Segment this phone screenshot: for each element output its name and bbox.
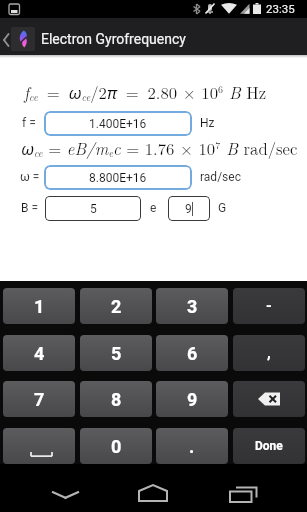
button[interactable] [233,381,305,417]
button[interactable] [3,428,75,464]
staticText: 1.400E+16 [89,117,147,131]
staticText: rad/sec [200,170,241,184]
button[interactable]: , [233,335,305,371]
staticText: 8 [111,389,122,410]
staticText: 9 [187,389,198,410]
staticText: Electron Gyrofrequency [41,31,186,47]
staticText: fce = ωce/2π = 2.80 × 106 B Hz [24,80,267,104]
staticText: ω = [20,170,40,184]
button[interactable]: 1.400E+16 [44,111,192,136]
staticText: Done [255,439,283,453]
button[interactable]: 4 [3,335,75,371]
button[interactable]: 6 [156,335,228,371]
staticText: 9 [185,202,192,216]
staticText: G [218,201,227,215]
staticText: 2 [111,296,122,317]
button[interactable] [40,478,90,508]
button[interactable]: 9 [168,196,210,221]
staticText: - [266,297,272,315]
staticText: 5 [90,202,97,216]
button[interactable]: . [156,428,228,464]
button[interactable]: - [233,288,305,324]
staticText: 3 [187,296,198,317]
button[interactable]: Done [233,428,305,464]
staticText: ωce = eB/mec = 1.76 × 107 B rad/sec [21,136,298,160]
button[interactable]: 1 [3,288,75,324]
staticText: . [189,436,195,457]
staticText: f = [22,116,36,130]
button[interactable]: 7 [3,381,75,417]
button[interactable] [215,478,265,508]
staticText: 23:35 [266,2,295,15]
button[interactable]: 8 [80,381,152,417]
button[interactable]: 2 [80,288,152,324]
staticText: 8.800E+16 [89,171,147,185]
staticText: 1 [34,296,45,317]
staticText: , [267,344,271,362]
staticText: 4 [34,343,45,364]
button[interactable] [11,27,35,51]
button[interactable]: 3 [156,288,228,324]
staticText: Hz [200,116,215,130]
button[interactable]: 9 [156,381,228,417]
staticText: 7 [34,389,45,410]
staticText: 0 [111,436,122,457]
staticText: B = [21,201,39,215]
button[interactable]: 5 [80,335,152,371]
button[interactable] [128,478,178,508]
staticText: 6 [187,343,198,364]
staticText: 5 [111,343,122,364]
button[interactable]: 5 [45,196,141,221]
staticText: e [150,201,157,215]
button[interactable]: 0 [80,428,152,464]
button[interactable]: 8.800E+16 [44,165,192,190]
